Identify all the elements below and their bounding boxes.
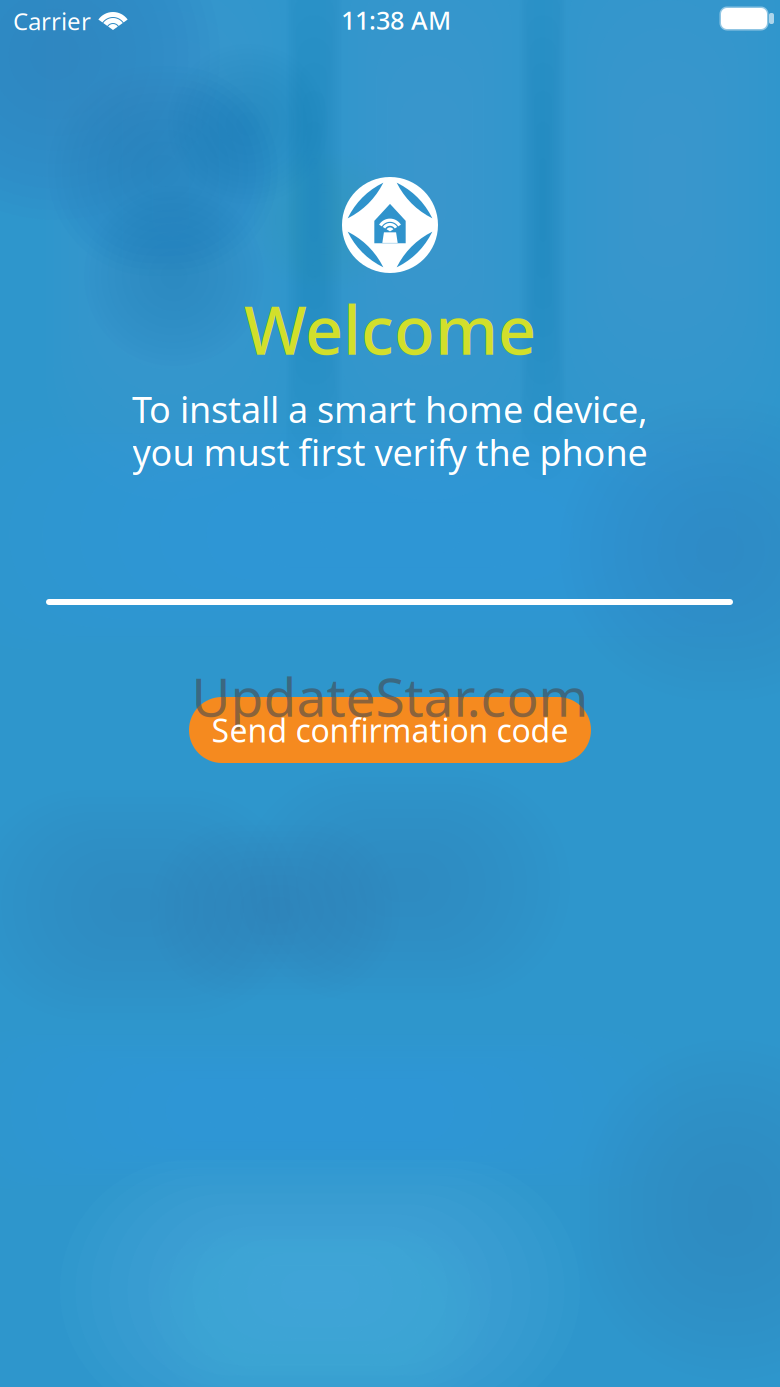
- staticText: Carrier: [13, 5, 91, 37]
- staticText: Send confirmation code: [211, 709, 568, 751]
- staticText: To install a smart home device,: [132, 385, 648, 433]
- staticText: 11:38 AM: [341, 3, 451, 37]
- staticText: UpdateStar.com: [191, 661, 588, 731]
- staticText: you must first verify the phone: [132, 428, 647, 476]
- staticText: Welcome: [244, 285, 536, 373]
- button[interactable]: [189, 697, 591, 763]
